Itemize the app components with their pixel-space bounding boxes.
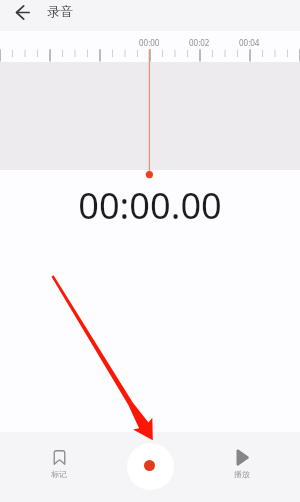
staticText: 播放: [234, 469, 250, 479]
button[interactable]: 标记: [37, 450, 81, 479]
staticText: 00:00.00: [0, 180, 300, 229]
button[interactable]: 播放: [220, 450, 264, 479]
staticText: 00:04: [239, 37, 260, 48]
staticText: 00:00: [139, 37, 160, 48]
staticText: 录音: [47, 3, 73, 19]
staticText: 标记: [51, 469, 67, 479]
button[interactable]: Record: [127, 443, 174, 490]
staticText: 00:02: [189, 37, 210, 48]
button[interactable]: Back: [8, 1, 37, 30]
